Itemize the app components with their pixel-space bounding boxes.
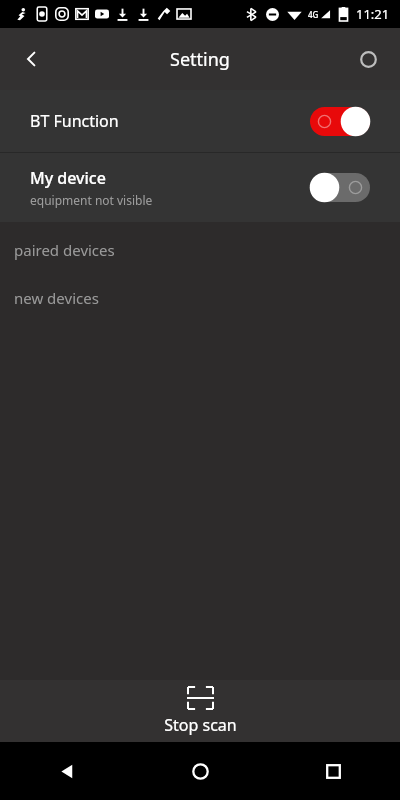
staticText: BT Function <box>30 110 119 132</box>
button[interactable]: On <box>310 107 370 136</box>
staticText: My device <box>30 167 106 189</box>
button[interactable]: paired devices <box>0 222 400 260</box>
button[interactable]: Back <box>10 37 54 81</box>
button[interactable]: My device <box>0 153 400 222</box>
staticText: Setting <box>170 47 230 72</box>
staticText: Stop scan <box>164 714 237 736</box>
button[interactable]: Off <box>310 173 370 202</box>
staticText: new devices <box>14 288 99 308</box>
staticText: 4G <box>308 9 319 20</box>
button[interactable]: Recents <box>267 742 400 800</box>
staticText: 11:21 <box>356 5 390 23</box>
button[interactable]: BT Function <box>0 90 400 152</box>
staticText: equipment not visible <box>30 192 153 208</box>
button[interactable]: Home <box>134 742 267 800</box>
button[interactable]: Back <box>0 742 134 800</box>
button[interactable]: Stop scan <box>0 680 400 742</box>
button[interactable]: new devices <box>0 260 400 308</box>
staticText: paired devices <box>14 240 115 260</box>
button[interactable]: Refresh <box>346 37 390 81</box>
